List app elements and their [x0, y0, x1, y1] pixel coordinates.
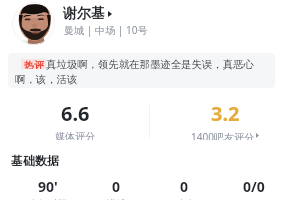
button[interactable]: 0 [150, 177, 219, 200]
staticText: 3.2 [211, 100, 240, 127]
button[interactable]: 0/0 [219, 177, 288, 200]
staticText: 助攻 [175, 198, 194, 200]
staticText: 1400吧友评分 [191, 130, 254, 140]
staticText: 媒体评分 [55, 130, 95, 140]
staticText: 90' [38, 177, 58, 196]
button[interactable]: 0 [82, 177, 150, 200]
staticText: 0/0 [243, 177, 265, 196]
button[interactable]: 谢尔基 [63, 5, 112, 23]
staticText: 曼城 | 中场 | 10号 [64, 23, 148, 37]
button[interactable]: 热评 [8, 53, 275, 88]
button[interactable]: 3.2 [150, 100, 300, 140]
staticText: 基础数据 [11, 153, 59, 168]
staticText: 进球 [107, 198, 126, 200]
button[interactable]: 6.6 [0, 100, 150, 140]
staticText: 0 [180, 177, 189, 196]
staticText: 谢尔基 [63, 5, 105, 23]
staticText: 0 [112, 177, 121, 196]
button[interactable]: 90' [14, 177, 82, 200]
staticText: 啊，该，活该 [15, 73, 78, 86]
staticText: 6.6 [61, 100, 90, 127]
staticText: 热评 [24, 59, 44, 69]
button[interactable]: Player photo [12, 2, 55, 45]
staticText: 真垃圾啊，领先就在那墨迹全是失误，真恶心 [46, 58, 254, 71]
staticText: 出场时间 [29, 198, 67, 200]
